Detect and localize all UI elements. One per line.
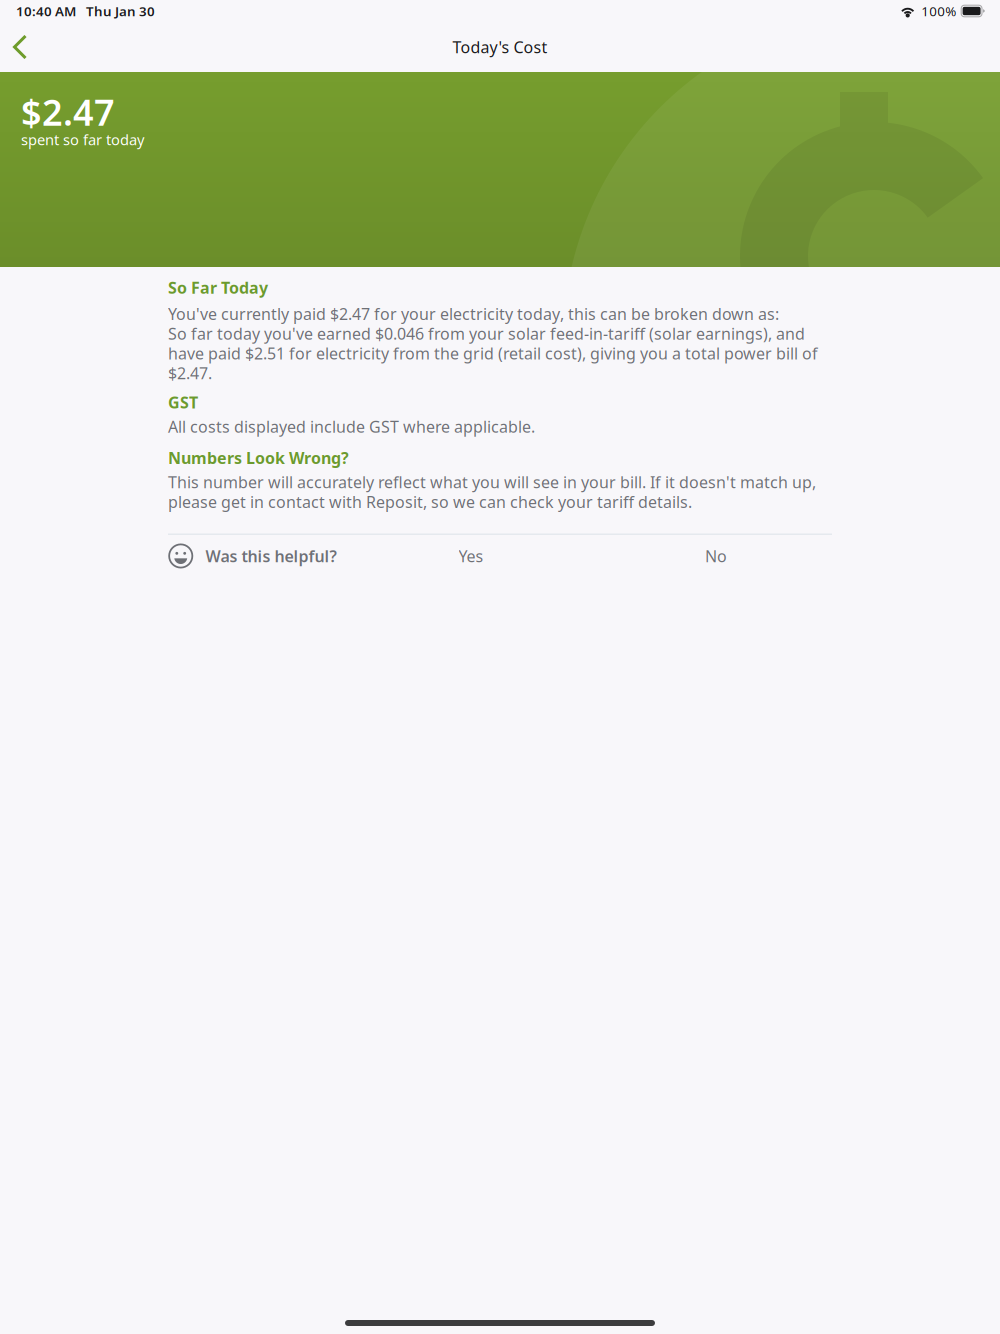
staticText: spent so far today [21, 130, 144, 149]
staticText: Was this helpful? [205, 545, 336, 567]
staticText: This number will accurately reflect what… [168, 471, 816, 512]
staticText: Numbers Look Wrong? [168, 447, 349, 468]
staticText: 10:40 AM [16, 2, 76, 20]
staticText: $2.47 [21, 88, 115, 136]
button[interactable]: Yes [410, 541, 532, 571]
staticText: Yes [458, 545, 483, 567]
staticText: 100% [921, 2, 956, 20]
button[interactable]: Back [0, 25, 45, 68]
staticText: GST [168, 392, 198, 413]
staticText: Thu Jan 30 [86, 2, 155, 20]
staticText: Today's Cost [452, 36, 547, 58]
staticText: You've currently paid $2.47 for your ele… [168, 303, 818, 384]
button[interactable]: Was this helpful? [168, 541, 410, 571]
staticText: All costs displayed include GST where ap… [168, 416, 535, 437]
button[interactable]: No [655, 541, 777, 571]
staticText: So Far Today [168, 277, 268, 298]
staticText: No [705, 545, 727, 567]
